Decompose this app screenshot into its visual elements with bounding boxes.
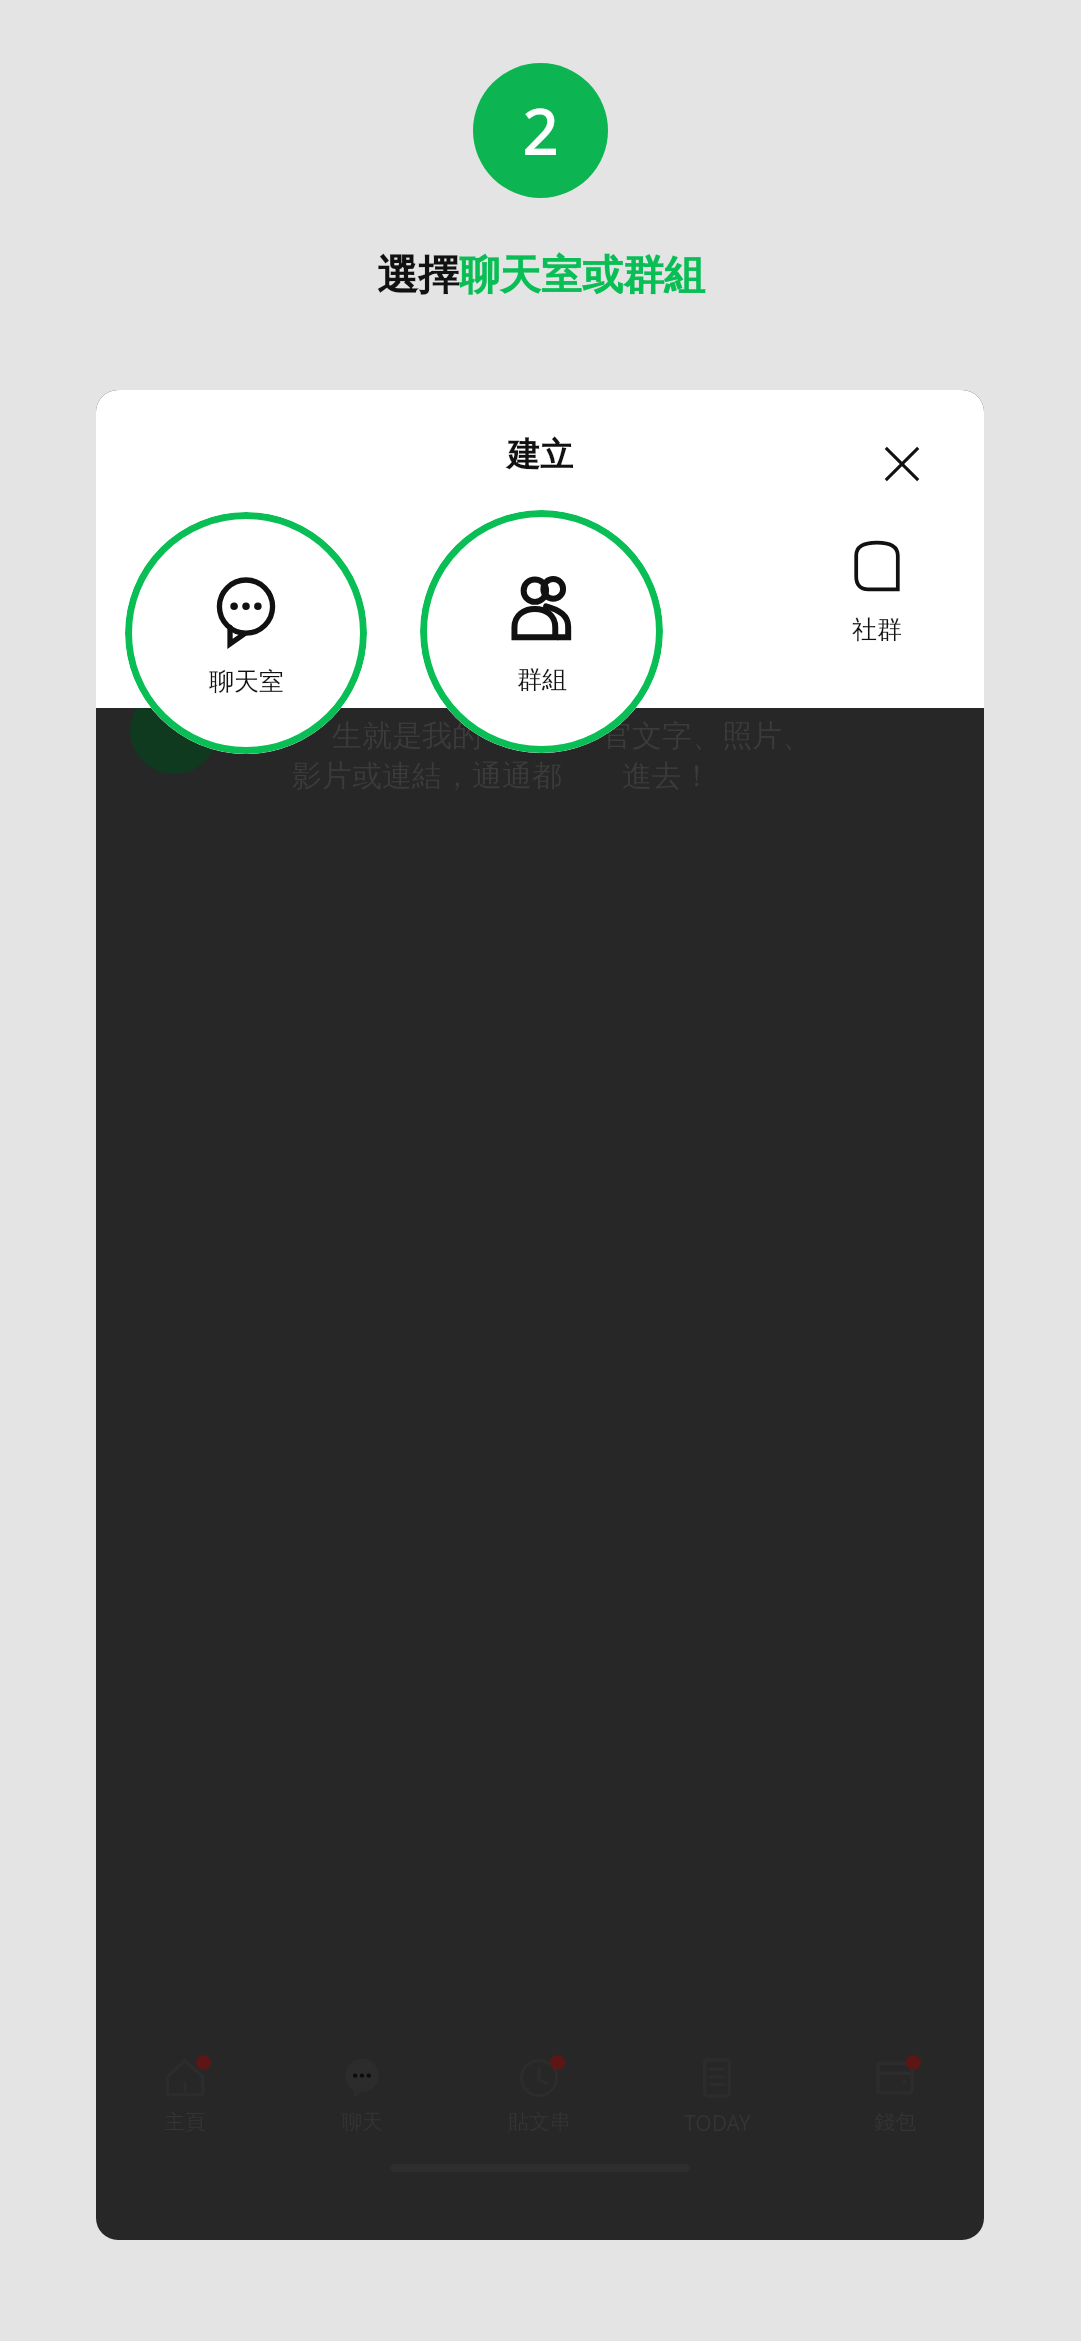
staticText: 群組	[517, 664, 567, 695]
button[interactable]: Close	[862, 424, 942, 504]
staticText: 錢包	[874, 2109, 916, 2135]
staticText: 聊天室	[209, 666, 284, 697]
button[interactable]: 聊天室	[125, 512, 367, 754]
button[interactable]: 社群	[756, 540, 984, 690]
staticText: 2	[522, 87, 559, 174]
staticText: TODAY	[684, 2109, 751, 2138]
button[interactable]: 群組	[420, 510, 663, 753]
staticText: 建立	[507, 434, 573, 476]
staticText: 生就是我的 官文字、照片、	[332, 714, 812, 755]
button[interactable]: 主頁	[96, 2044, 273, 2156]
staticText: 影片或連結，通通都 進去！	[292, 754, 712, 795]
staticText: 選擇聊天室或群組	[377, 250, 705, 302]
staticText: 社群	[852, 614, 902, 645]
staticText: 貼文串	[508, 2109, 571, 2135]
staticText: 主頁	[164, 2109, 206, 2135]
staticText: 聊天	[341, 2109, 383, 2135]
button[interactable]: 錢包	[806, 2044, 984, 2156]
button[interactable]: 貼文串	[450, 2044, 628, 2156]
